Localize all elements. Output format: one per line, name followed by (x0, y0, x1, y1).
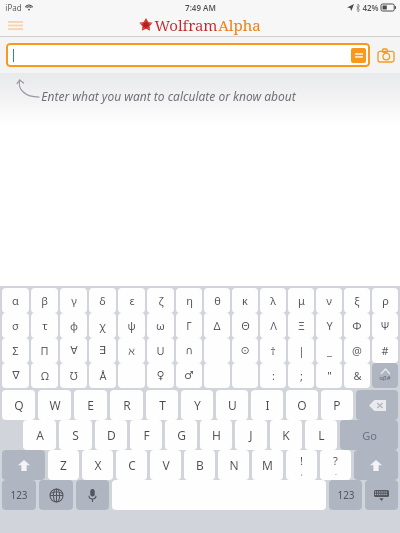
button[interactable]: M (252, 450, 283, 480)
staticText: 123 (10, 488, 28, 502)
button[interactable]: ρ (372, 288, 398, 313)
button[interactable]: R (110, 390, 143, 420)
button[interactable]: Å (89, 363, 116, 388)
button[interactable]: ♀ (147, 363, 174, 388)
button[interactable]: H (200, 420, 232, 450)
button[interactable]: Ξ (288, 313, 314, 338)
button[interactable]: J (235, 420, 267, 450)
button[interactable]: & (344, 363, 370, 388)
staticText: & (353, 368, 362, 383)
button[interactable]: Hide keyboard (365, 480, 398, 510)
button[interactable]: A (23, 420, 56, 450)
button[interactable]: Z (48, 450, 79, 480)
button[interactable]: μ (288, 288, 314, 313)
button[interactable]: F (130, 420, 162, 450)
button[interactable]: ξ (344, 288, 370, 313)
button[interactable]: Backspace (356, 390, 398, 420)
button[interactable]: I (251, 390, 283, 420)
button[interactable]: α (2, 288, 29, 313)
button[interactable]: W (38, 390, 71, 420)
button[interactable]: τ (31, 313, 58, 338)
button[interactable]: Symbol shift (372, 363, 398, 388)
button[interactable]: 123 (2, 480, 36, 510)
button[interactable]: ν (316, 288, 342, 313)
button[interactable]: Π (31, 338, 58, 363)
button[interactable]: | (288, 338, 314, 363)
button[interactable]: U (216, 390, 248, 420)
staticText: F (143, 427, 150, 443)
button[interactable]: K (270, 420, 302, 450)
button[interactable]: U (147, 338, 174, 363)
button[interactable]: ⊙ (232, 338, 258, 363)
button[interactable]: ∇ (2, 363, 29, 388)
button[interactable]: Θ (232, 313, 258, 338)
button[interactable]: κ (232, 288, 258, 313)
button[interactable]: ∃ (89, 338, 116, 363)
button[interactable]: ; (288, 363, 314, 388)
button[interactable]: Keyboard options (351, 48, 366, 63)
button[interactable]: ℵ (118, 338, 145, 363)
button[interactable]: G (165, 420, 197, 450)
button[interactable]: 123 (329, 480, 362, 510)
button[interactable]: : (260, 363, 286, 388)
button[interactable]: Keyboard options (6, 43, 370, 67)
button[interactable]: χ (89, 313, 116, 338)
button[interactable]: X (82, 450, 113, 480)
button[interactable]: ! (286, 450, 317, 480)
button[interactable]: L (305, 420, 337, 450)
button[interactable]: D (95, 420, 127, 450)
button[interactable]: † (260, 338, 286, 363)
button[interactable]: C (116, 450, 147, 480)
button[interactable]: Camera input (376, 45, 396, 65)
button[interactable]: Shift (2, 450, 45, 480)
button[interactable]: θ (204, 288, 230, 313)
button[interactable]: Change language (39, 480, 73, 510)
button[interactable]: S (59, 420, 92, 450)
button[interactable]: O (286, 390, 318, 420)
button[interactable]: # (372, 338, 398, 363)
button[interactable]: Λ (260, 313, 286, 338)
button[interactable]: η (176, 288, 202, 313)
button[interactable]: Go (340, 420, 398, 450)
button[interactable]: Y (181, 390, 213, 420)
button[interactable]: P (321, 390, 353, 420)
button[interactable]: γ (60, 288, 87, 313)
button[interactable]: λ (260, 288, 286, 313)
button[interactable]: ∀ (60, 338, 87, 363)
button[interactable]: δ (89, 288, 116, 313)
button[interactable]: ψ (118, 313, 145, 338)
button[interactable]: σ (2, 313, 29, 338)
button[interactable]: ∩ (176, 338, 202, 363)
staticText: ? (333, 453, 338, 468)
button[interactable]: T (146, 390, 178, 420)
button[interactable]: Σ (2, 338, 29, 363)
button[interactable]: ? (320, 450, 351, 480)
button[interactable]: N (218, 450, 249, 480)
button[interactable]: Q (2, 390, 35, 420)
button[interactable]: Shift (354, 450, 398, 480)
button[interactable]: E (74, 390, 107, 420)
button[interactable]: ω (147, 313, 174, 338)
button[interactable]: Dictate (76, 480, 109, 510)
button[interactable]: _ (316, 338, 342, 363)
button[interactable]: B (184, 450, 215, 480)
button[interactable]: " (316, 363, 342, 388)
button[interactable]: Δ (204, 313, 230, 338)
button[interactable]: Φ (344, 313, 370, 338)
button[interactable]: Menu (3, 16, 27, 34)
button[interactable]: Γ (176, 313, 202, 338)
button[interactable]: ζ (147, 288, 174, 313)
button[interactable]: Υ (316, 313, 342, 338)
button[interactable]: ℧ (60, 363, 87, 388)
button[interactable]: Ψ (372, 313, 398, 338)
button[interactable]: Ω (31, 363, 58, 388)
button[interactable]: β (31, 288, 58, 313)
staticText: Ψ (380, 318, 390, 333)
button[interactable]: @ (344, 338, 370, 363)
button[interactable]: V (150, 450, 181, 480)
staticText: Q (14, 397, 24, 413)
button[interactable]: ε (118, 288, 145, 313)
button[interactable]: φ (60, 313, 87, 338)
button[interactable]: ♂ (176, 363, 202, 388)
